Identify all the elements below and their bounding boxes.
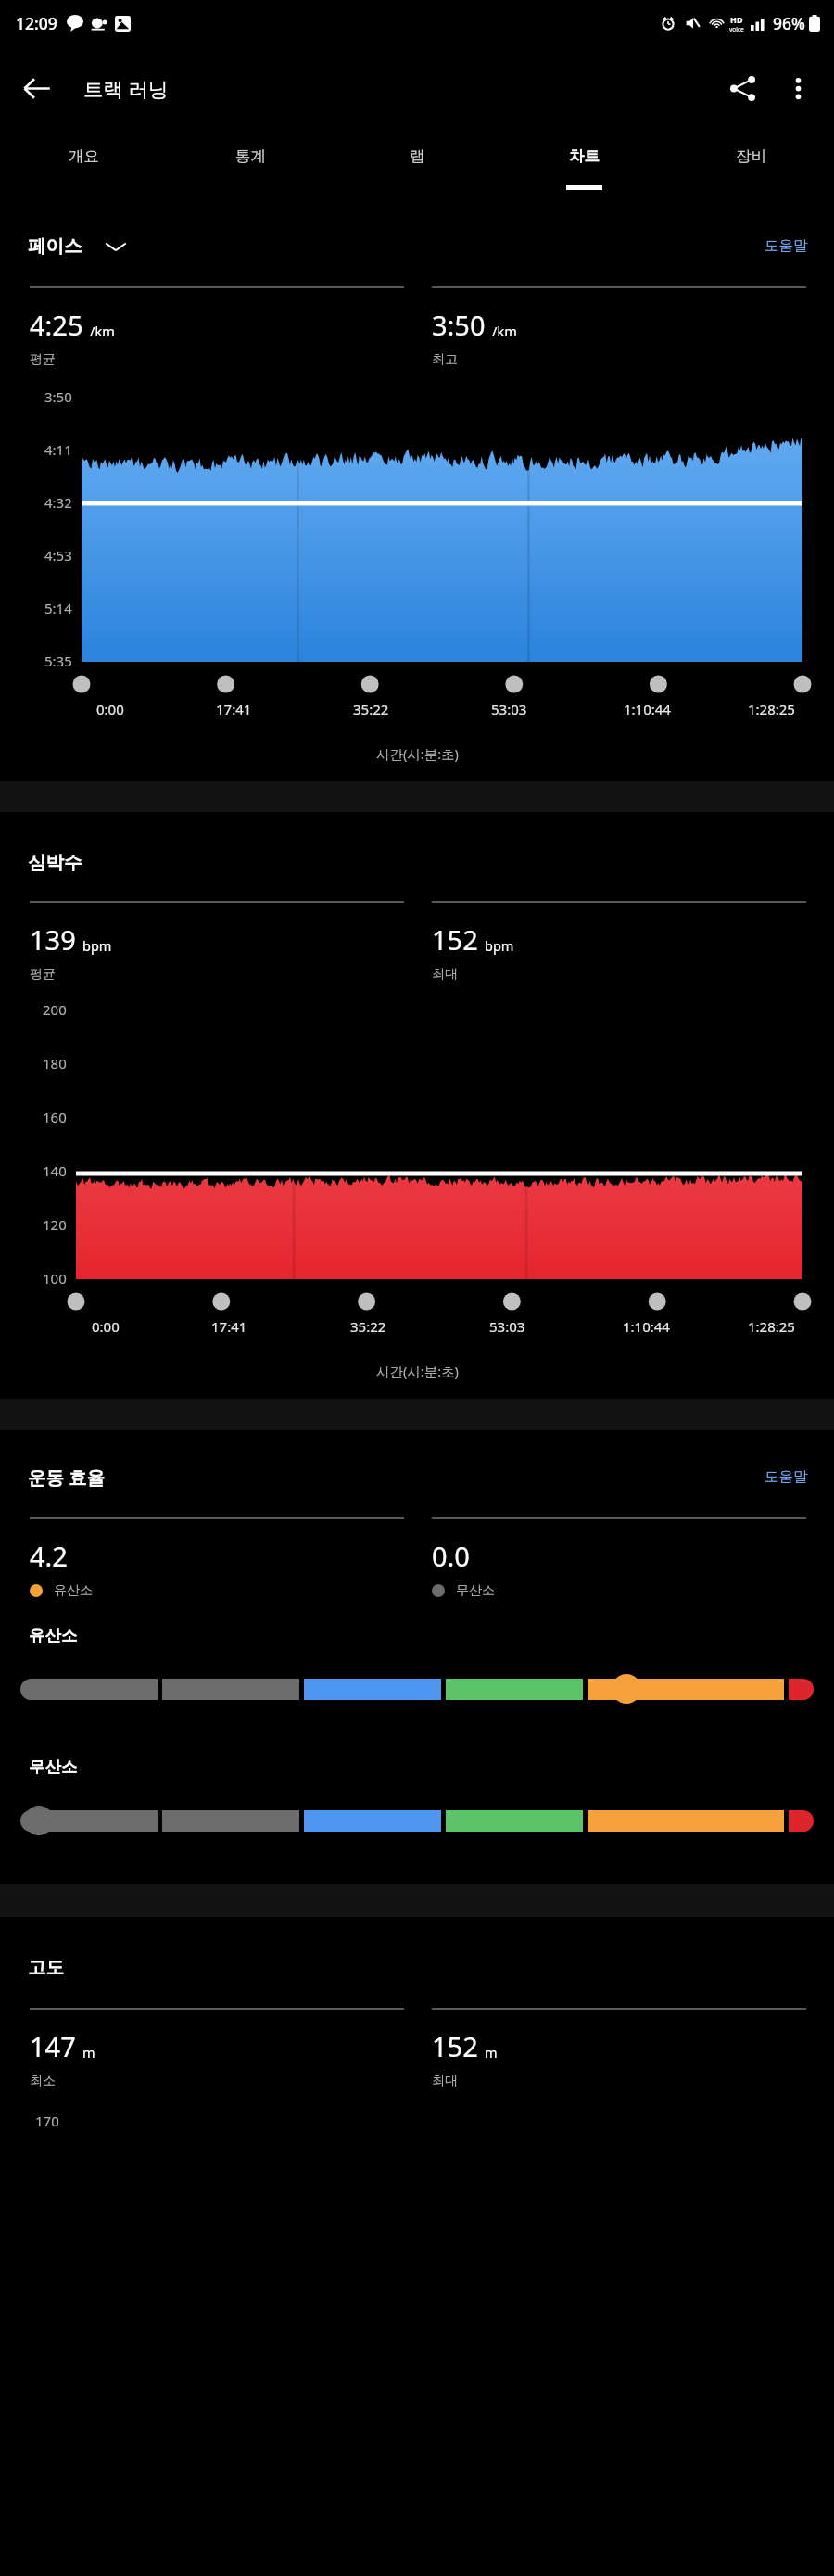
staticText: 4:25 bbox=[30, 307, 83, 343]
staticText: 시간(시:분:초) bbox=[376, 1362, 459, 1380]
staticText: 96% bbox=[773, 12, 805, 34]
staticText: 유산소 bbox=[29, 1625, 78, 1645]
staticText: 페이스 bbox=[28, 235, 82, 258]
staticText: bpm bbox=[82, 936, 112, 955]
staticText: /km bbox=[492, 322, 517, 340]
staticText: 4:32 bbox=[44, 493, 72, 512]
staticText: 무산소 bbox=[29, 1757, 78, 1777]
button[interactable]: More options bbox=[770, 60, 826, 116]
button[interactable]: 차트 bbox=[500, 131, 667, 196]
staticText: 무산소 bbox=[456, 1582, 495, 1599]
staticText: 최대 bbox=[432, 2073, 458, 2089]
staticText: 12:09 bbox=[16, 12, 57, 34]
staticText: 0:00 bbox=[96, 700, 124, 718]
staticText: 0.0 bbox=[432, 1538, 470, 1574]
staticText: 장비 bbox=[736, 146, 766, 166]
staticText: 1:10:44 bbox=[624, 700, 671, 718]
staticText: 통계 bbox=[235, 146, 266, 166]
button[interactable]: Back bbox=[8, 60, 64, 116]
staticText: 4:11 bbox=[44, 440, 72, 459]
staticText: 5:14 bbox=[44, 599, 72, 617]
staticText: 도움말 bbox=[764, 236, 808, 255]
staticText: 1:28:25 bbox=[748, 1317, 795, 1336]
staticText: 35:22 bbox=[353, 700, 389, 718]
staticText: 트랙 러닝 bbox=[83, 75, 169, 102]
staticText: 53:03 bbox=[491, 700, 527, 718]
staticText: 고도 bbox=[28, 1956, 64, 1979]
staticText: 심박수 bbox=[28, 851, 82, 874]
button[interactable]: Share bbox=[714, 60, 770, 116]
button[interactable]: 장비 bbox=[667, 131, 834, 196]
staticText: 140 bbox=[43, 1161, 67, 1180]
staticText: 170 bbox=[35, 2112, 59, 2130]
staticText: 1:28:25 bbox=[748, 700, 795, 718]
staticText: 17:41 bbox=[211, 1317, 247, 1336]
staticText: 200 bbox=[43, 1000, 67, 1019]
staticText: voice bbox=[729, 25, 744, 33]
staticText: 4.2 bbox=[30, 1538, 68, 1574]
staticText: 최소 bbox=[30, 2073, 56, 2089]
button[interactable]: 도움말 bbox=[757, 1460, 815, 1493]
button[interactable]: 랩 bbox=[334, 131, 500, 196]
button[interactable]: 개요 bbox=[0, 131, 167, 196]
staticText: 평균 bbox=[30, 351, 56, 368]
staticText: 139 bbox=[30, 921, 76, 958]
staticText: 최고 bbox=[432, 351, 458, 368]
staticText: 1:10:44 bbox=[623, 1317, 670, 1336]
staticText: 최대 bbox=[432, 966, 458, 983]
staticText: 100 bbox=[43, 1269, 67, 1288]
staticText: 랩 bbox=[410, 146, 425, 166]
staticText: 5:35 bbox=[44, 652, 72, 670]
staticText: m bbox=[485, 2043, 498, 2062]
staticText: 4:53 bbox=[44, 546, 72, 565]
staticText: /km bbox=[90, 322, 115, 340]
staticText: bpm bbox=[485, 936, 514, 955]
staticText: 35:22 bbox=[350, 1317, 386, 1336]
staticText: HD bbox=[730, 14, 743, 25]
staticText: 운동 효율 bbox=[28, 1465, 106, 1490]
staticText: 개요 bbox=[69, 146, 99, 166]
button[interactable]: 도움말 bbox=[757, 229, 815, 262]
staticText: 152 bbox=[432, 921, 478, 958]
staticText: 평균 bbox=[30, 966, 56, 983]
button[interactable]: 통계 bbox=[167, 131, 334, 196]
staticText: 유산소 bbox=[54, 1582, 93, 1599]
staticText: 0:00 bbox=[92, 1317, 120, 1336]
staticText: 120 bbox=[43, 1215, 67, 1234]
staticText: 17:41 bbox=[216, 700, 252, 718]
staticText: 도움말 bbox=[764, 1467, 808, 1486]
staticText: m bbox=[82, 2043, 95, 2062]
button[interactable]: 페이스 bbox=[28, 229, 127, 263]
staticText: 152 bbox=[432, 2028, 478, 2064]
staticText: 53:03 bbox=[489, 1317, 525, 1336]
staticText: 3:50 bbox=[44, 387, 72, 406]
staticText: 147 bbox=[30, 2028, 76, 2064]
staticText: 160 bbox=[43, 1108, 67, 1126]
staticText: 시간(시:분:초) bbox=[376, 744, 459, 763]
staticText: 3:50 bbox=[432, 307, 486, 343]
staticText: 180 bbox=[43, 1054, 67, 1072]
staticText: 차트 bbox=[569, 146, 600, 166]
